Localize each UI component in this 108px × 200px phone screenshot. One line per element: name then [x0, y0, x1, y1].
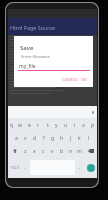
button[interactable]: Voice input — [92, 111, 94, 114]
staticText: a — [15, 134, 18, 141]
staticText: t — [47, 121, 49, 128]
staticText: p — [91, 121, 95, 128]
staticText: w — [18, 121, 23, 128]
button[interactable]: c — [39, 144, 48, 157]
staticText: Save — [20, 44, 34, 52]
staticText: r — [37, 121, 40, 128]
button[interactable]: h — [57, 131, 66, 144]
staticText: u — [64, 121, 68, 128]
button[interactable]: CANCEL — [60, 75, 80, 85]
button[interactable]: OK — [79, 75, 89, 85]
button[interactable]: Enter — [84, 157, 97, 178]
staticText: x — [33, 147, 36, 154]
button[interactable]: ?123 — [8, 157, 21, 178]
button[interactable]: q — [8, 118, 16, 131]
button[interactable]: f — [39, 131, 48, 144]
staticText: f — [43, 134, 45, 141]
staticText: l — [88, 134, 90, 141]
button[interactable]: Comma — [21, 157, 30, 178]
button[interactable]: Shift — [8, 144, 21, 157]
button[interactable]: t — [43, 118, 52, 131]
button[interactable]: p — [88, 118, 97, 131]
staticText: b — [60, 147, 64, 154]
button[interactable]: i — [70, 118, 79, 131]
staticText: o — [82, 121, 86, 128]
staticText: y — [55, 121, 58, 128]
button[interactable]: r — [34, 118, 43, 131]
button[interactable]: w — [16, 118, 25, 131]
button[interactable]: a — [12, 131, 21, 144]
button[interactable]: l — [84, 131, 93, 144]
staticText: s — [24, 134, 27, 141]
staticText: . — [79, 164, 81, 171]
button[interactable]: e — [25, 118, 34, 131]
staticText: OK — [81, 77, 87, 83]
button[interactable]: Backspace — [84, 144, 97, 157]
staticText: k — [78, 134, 81, 141]
button[interactable]: z — [21, 144, 30, 157]
button[interactable]: d — [30, 131, 39, 144]
button[interactable]: u — [61, 118, 70, 131]
button[interactable]: n — [66, 144, 75, 157]
button[interactable]: b — [57, 144, 66, 157]
button[interactable]: o — [79, 118, 88, 131]
staticText: h — [60, 134, 64, 141]
button[interactable]: s — [21, 131, 30, 144]
staticText: c — [42, 147, 45, 154]
staticText: e — [28, 121, 31, 128]
staticText: q — [10, 121, 14, 128]
button[interactable]: j — [66, 131, 75, 144]
staticText: n — [69, 147, 73, 154]
staticText: ?123 — [11, 165, 19, 170]
button[interactable]: x — [30, 144, 39, 157]
staticText: Html Page Source — [10, 24, 56, 31]
staticText: g — [51, 134, 55, 141]
staticText: d — [33, 134, 37, 141]
button[interactable]: k — [75, 131, 84, 144]
staticText: my_file — [19, 63, 36, 70]
staticText: CANCEL — [62, 77, 78, 83]
staticText: j — [70, 134, 72, 141]
staticText: , — [25, 164, 27, 171]
button[interactable]: y — [52, 118, 61, 131]
staticText: m — [77, 147, 82, 154]
button[interactable]: v — [48, 144, 57, 157]
button[interactable]: m — [75, 144, 84, 157]
button[interactable]: g — [48, 131, 57, 144]
staticText: v — [51, 147, 54, 154]
staticText: Enter filename — [21, 54, 50, 60]
staticText: i — [74, 121, 76, 128]
staticText: z — [24, 147, 27, 154]
